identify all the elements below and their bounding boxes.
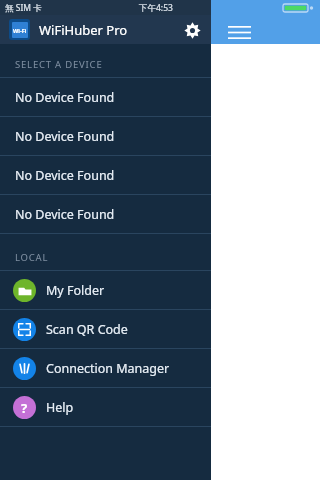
staticText: Wi-Fi [13, 27, 27, 34]
staticText: LOCAL [15, 251, 49, 264]
staticText: No Device Found [15, 128, 115, 145]
staticText: 下午4:53 [139, 2, 173, 14]
staticText: No Device Found [15, 89, 115, 106]
staticText: WiFiHuber Pro [39, 21, 128, 39]
button[interactable]: Scan QR Code [0, 310, 211, 348]
button[interactable]: Settings [180, 18, 204, 42]
button[interactable]: Connection Manager [0, 349, 211, 387]
staticText: No Device Found [15, 167, 115, 184]
button[interactable]: No Device Found [0, 156, 211, 194]
staticText: ? [21, 399, 28, 417]
staticText: Scan QR Code [46, 321, 128, 338]
button[interactable]: No Device Found [0, 78, 211, 116]
button[interactable]: Open navigation menu [223, 19, 255, 45]
button[interactable]: No Device Found [0, 195, 211, 233]
staticText: No Device Found [15, 206, 115, 223]
staticText: Connection Manager [46, 360, 170, 377]
staticText: Help [46, 399, 74, 416]
button[interactable]: ? [0, 388, 211, 426]
button[interactable]: No Device Found [0, 117, 211, 155]
staticText: 無 SIM 卡 [5, 2, 42, 14]
button[interactable]: My Folder [0, 271, 211, 309]
staticText: SELECT A DEVICE [15, 58, 103, 71]
staticText: My Folder [46, 282, 105, 299]
